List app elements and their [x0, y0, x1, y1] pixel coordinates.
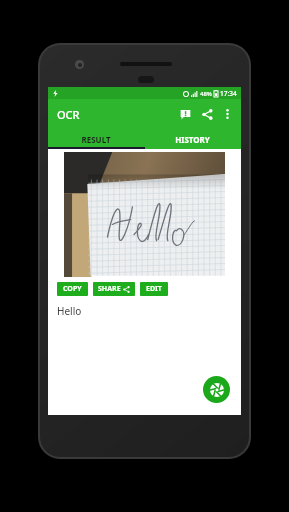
staticText: RESULT [81, 134, 111, 145]
button[interactable]: SHARE [93, 282, 135, 296]
staticText: SHARE [98, 284, 121, 294]
staticText: EDIT [146, 284, 162, 294]
button[interactable]: Feedback [174, 103, 196, 125]
staticText: 48% [200, 90, 212, 98]
staticText: 17:34 [220, 89, 237, 98]
button[interactable]: Capture photo [203, 376, 230, 403]
button[interactable]: RESULT [48, 129, 144, 149]
button[interactable]: More options [218, 105, 236, 123]
button[interactable]: HISTORY [144, 129, 241, 149]
staticText: COPY [63, 284, 82, 294]
staticText: OCR [57, 107, 80, 122]
button[interactable]: EDIT [140, 282, 168, 296]
staticText: HISTORY [175, 134, 210, 145]
staticText: Hello [57, 304, 82, 318]
button[interactable] [64, 152, 225, 277]
button[interactable]: COPY [57, 282, 88, 296]
button[interactable]: Share [196, 103, 218, 125]
